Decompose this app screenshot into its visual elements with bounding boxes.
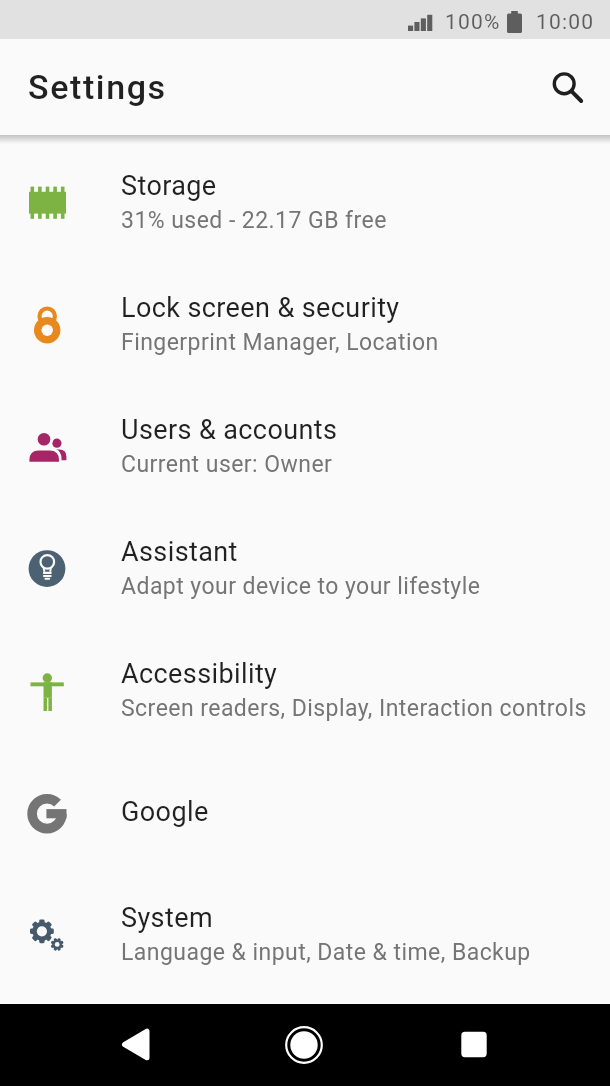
staticText: Accessibility	[121, 658, 278, 690]
button[interactable]	[106, 1015, 166, 1075]
staticText: Language & input, Date & time, Backup	[121, 939, 531, 966]
button[interactable]: Lock screen & security	[0, 263, 610, 385]
button[interactable]: System	[0, 873, 610, 995]
staticText: 100%	[445, 10, 501, 35]
staticText: Lock screen & security	[121, 292, 400, 324]
button[interactable]	[544, 67, 584, 107]
staticText: Assistant	[121, 536, 238, 568]
staticText: Storage	[121, 170, 217, 202]
staticText: 10:00	[536, 10, 595, 35]
staticText: Screen readers, Display, Interaction con…	[121, 695, 587, 722]
staticText: Adapt your device to your lifestyle	[121, 573, 481, 600]
staticText: System	[121, 902, 213, 934]
button[interactable]	[444, 1015, 504, 1075]
button[interactable]	[274, 1015, 334, 1075]
staticText: Settings	[28, 67, 167, 107]
button[interactable]: Storage	[0, 141, 610, 263]
button[interactable]: Accessibility	[0, 629, 610, 751]
button[interactable]: Google	[0, 751, 610, 873]
staticText: Google	[121, 796, 209, 828]
staticText: Fingerprint Manager, Location	[121, 329, 439, 356]
staticText: Current user: Owner	[121, 451, 333, 478]
staticText: Users & accounts	[121, 414, 338, 446]
button[interactable]: Users & accounts	[0, 385, 610, 507]
staticText: 31% used - 22.17 GB free	[121, 207, 387, 234]
button[interactable]: Assistant	[0, 507, 610, 629]
